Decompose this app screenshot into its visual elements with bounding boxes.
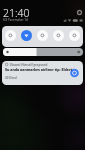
button[interactable]: Xiaomi Himself proposed bbox=[2, 61, 83, 85]
staticText: 40 Dinal bbox=[5, 76, 17, 80]
staticText: 8.8 Pacemaker Tel bbox=[3, 18, 29, 22]
staticText: 21:40 bbox=[3, 6, 30, 20]
staticText: Su anda aanmarkm airliner tip: Eldert bbox=[5, 67, 73, 72]
staticText: Su anda aanmarkm airliner tip: Eldert bbox=[5, 67, 73, 72]
button[interactable] bbox=[37, 30, 48, 41]
button[interactable] bbox=[5, 30, 16, 41]
staticText: Xiaomi Himself proposed bbox=[10, 63, 48, 67]
button[interactable] bbox=[76, 9, 83, 16]
button[interactable] bbox=[53, 30, 64, 41]
button[interactable] bbox=[3, 48, 83, 56]
button[interactable] bbox=[21, 30, 32, 41]
button[interactable] bbox=[69, 30, 80, 41]
